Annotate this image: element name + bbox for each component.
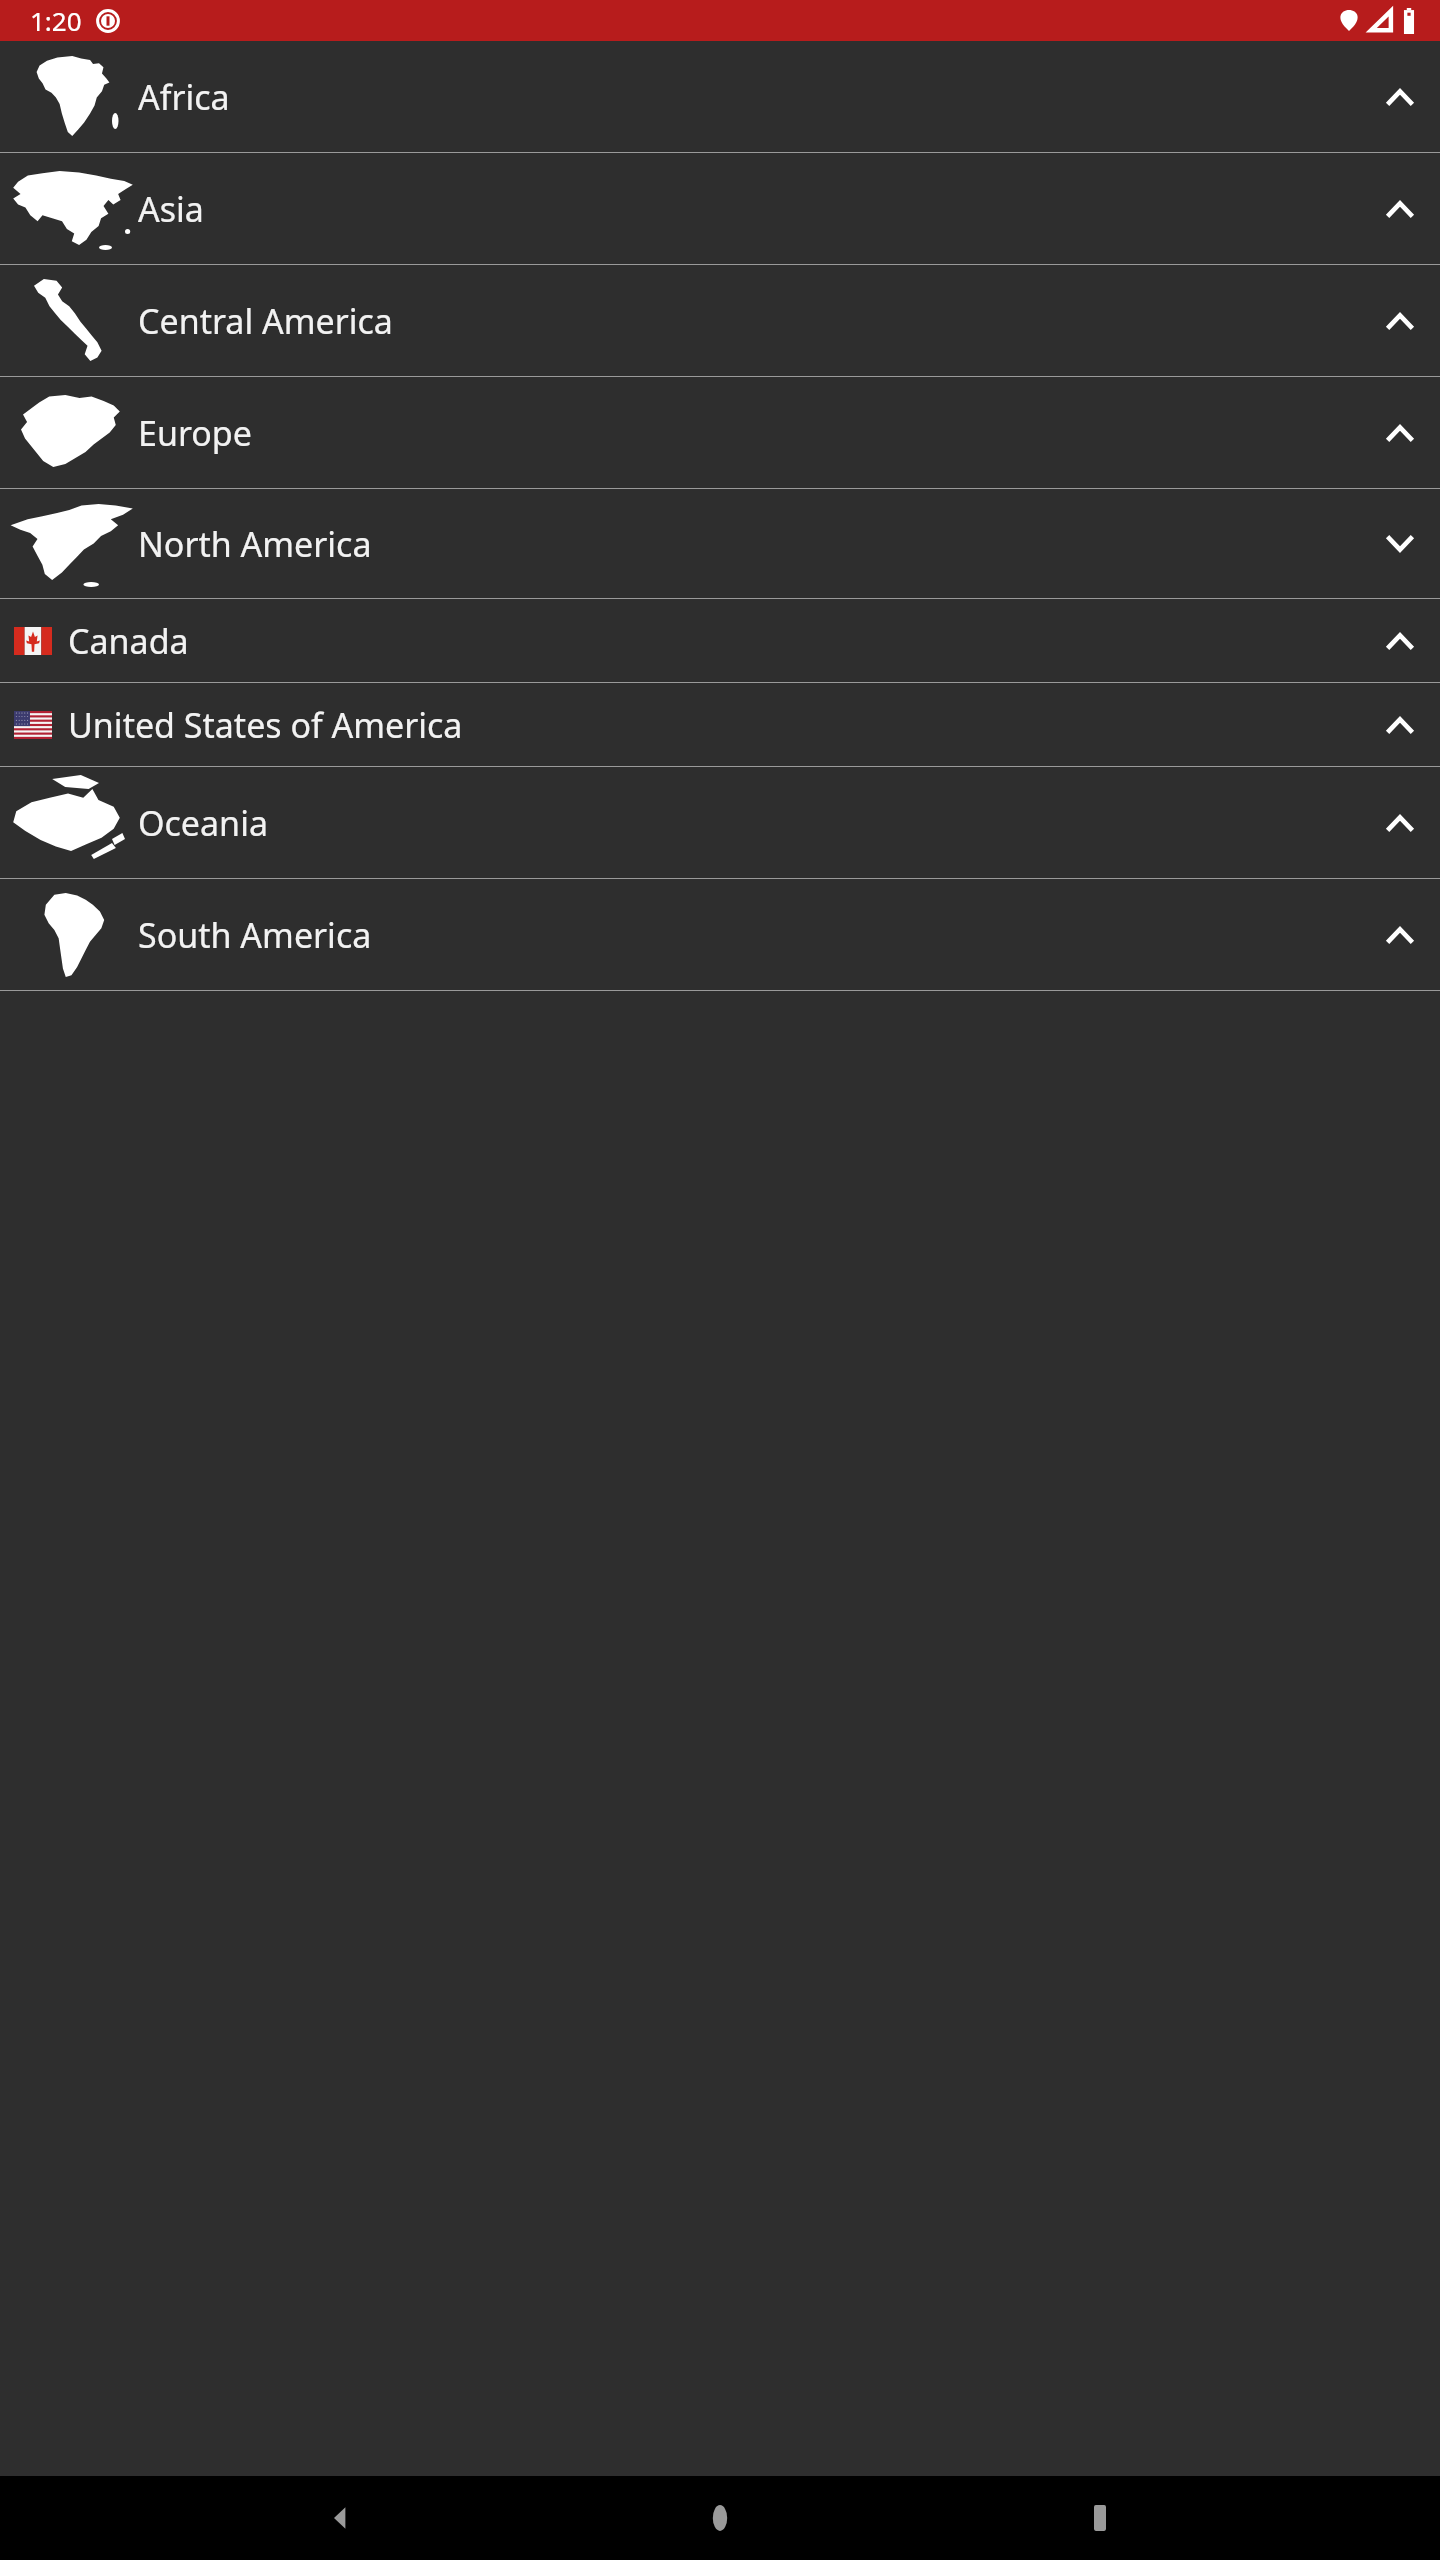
button[interactable]: Asia: [0, 153, 1440, 265]
button[interactable]: Home: [680, 2478, 760, 2558]
staticText: North America: [138, 521, 372, 567]
other: Collapse: [1385, 710, 1415, 740]
button[interactable]: Canada: [0, 599, 1440, 683]
other: Collapse: [1385, 418, 1415, 448]
button[interactable]: North America: [0, 489, 1440, 599]
staticText: United States of America: [68, 702, 463, 748]
staticText: 1:20: [30, 3, 82, 38]
other: Collapse: [1385, 194, 1415, 224]
other: Expand: [1385, 529, 1415, 559]
button[interactable]: South America: [0, 879, 1440, 991]
button[interactable]: Back: [300, 2478, 380, 2558]
staticText: South America: [138, 912, 372, 958]
other: Collapse: [1385, 82, 1415, 112]
staticText: Central America: [138, 298, 393, 344]
button[interactable]: Oceania: [0, 767, 1440, 879]
other: Collapse: [1385, 920, 1415, 950]
button[interactable]: Africa: [0, 41, 1440, 153]
staticText: Africa: [138, 74, 230, 120]
other: Collapse: [1385, 306, 1415, 336]
staticText: Oceania: [138, 800, 268, 846]
button[interactable]: United States of America: [0, 683, 1440, 767]
button[interactable]: Recents: [1060, 2478, 1140, 2558]
button[interactable]: Europe: [0, 377, 1440, 489]
staticText: Canada: [68, 618, 189, 664]
button[interactable]: Central America: [0, 265, 1440, 377]
staticText: Europe: [138, 410, 252, 456]
other: Collapse: [1385, 808, 1415, 838]
staticText: Asia: [138, 186, 204, 232]
other: Collapse: [1385, 626, 1415, 656]
